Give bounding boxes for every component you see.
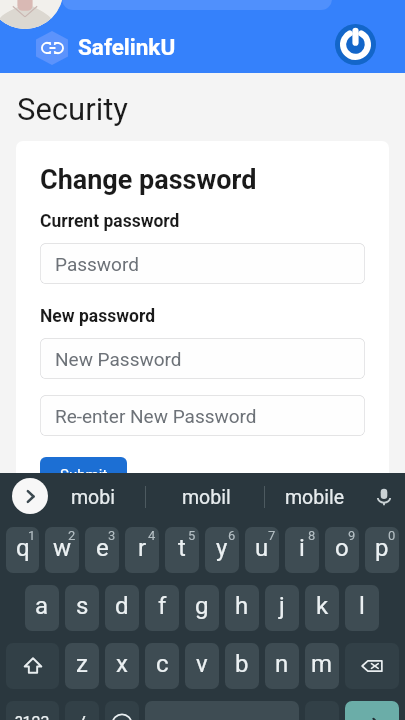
button[interactable]: New Password: [40, 338, 365, 379]
button[interactable]: Emoji: [105, 701, 139, 720]
button[interactable]: v: [185, 643, 219, 689]
staticText: l: [359, 592, 365, 620]
staticText: Current password: [40, 211, 180, 232]
staticText: h: [235, 592, 249, 620]
staticText: b: [235, 650, 249, 678]
button[interactable]: Profile: [0, 0, 63, 29]
staticText: SafelinkU: [78, 34, 176, 60]
staticText: c: [156, 650, 169, 678]
button[interactable]: SafelinkU: [35, 31, 176, 65]
staticText: Security: [17, 91, 129, 127]
staticText: 8: [308, 528, 316, 543]
staticText: t: [178, 534, 186, 562]
button[interactable]: Backspace: [345, 643, 399, 689]
staticText: Password: [55, 253, 139, 275]
button[interactable]: i: [285, 527, 319, 573]
button[interactable]: Shift: [6, 643, 59, 689]
button[interactable]: b: [225, 643, 259, 689]
staticText: d: [115, 592, 129, 620]
staticText: 6: [228, 528, 236, 543]
staticText: ?123: [15, 713, 50, 720]
staticText: f: [158, 592, 167, 620]
button[interactable]: x: [105, 643, 139, 689]
button[interactable]: Password: [40, 243, 365, 284]
staticText: w: [53, 534, 72, 562]
staticText: a: [35, 592, 49, 620]
staticText: 2: [68, 528, 76, 543]
button[interactable]: u: [245, 527, 279, 573]
staticText: e: [96, 534, 109, 562]
button[interactable]: mobile: [265, 473, 363, 521]
staticText: 3: [108, 528, 116, 543]
button[interactable]: k: [305, 585, 339, 631]
button[interactable]: t: [165, 527, 199, 573]
button[interactable]: e: [85, 527, 119, 573]
button[interactable]: d: [105, 585, 139, 631]
staticText: i: [299, 534, 305, 562]
staticText: 0: [388, 528, 396, 543]
button[interactable]: j: [265, 585, 299, 631]
staticText: mobil: [182, 486, 231, 509]
staticText: 4: [148, 528, 156, 543]
staticText: mobile: [285, 486, 344, 509]
button[interactable]: o: [325, 527, 359, 573]
button[interactable]: h: [225, 585, 259, 631]
staticText: 9: [348, 528, 356, 543]
button[interactable]: Enter: [345, 701, 399, 720]
button[interactable]: ?123: [6, 701, 59, 720]
staticText: g: [195, 592, 209, 620]
button[interactable]: Voice input: [363, 473, 405, 521]
button[interactable]: Logout: [335, 24, 376, 65]
staticText: p: [375, 534, 389, 562]
staticText: Submit: [60, 466, 108, 484]
staticText: s: [76, 592, 89, 620]
staticText: New Password: [55, 348, 182, 370]
button[interactable]: Re-enter New Password: [40, 395, 365, 436]
button[interactable]: z: [65, 643, 99, 689]
staticText: v: [196, 650, 208, 678]
button[interactable]: m: [305, 643, 339, 689]
staticText: Re-enter New Password: [55, 405, 257, 427]
staticText: Change password: [40, 164, 257, 196]
staticText: j: [279, 592, 285, 620]
staticText: m: [311, 650, 333, 678]
staticText: 5: [188, 528, 196, 543]
button[interactable]: Submit: [40, 457, 127, 493]
button[interactable]: mobil: [146, 473, 266, 521]
staticText: n: [275, 650, 289, 678]
staticText: u: [255, 534, 269, 562]
button[interactable]: n: [265, 643, 299, 689]
button[interactable]: q: [6, 527, 39, 573]
button[interactable]: mobi: [44, 473, 142, 521]
staticText: 7: [268, 528, 276, 543]
staticText: q: [16, 534, 30, 562]
button[interactable]: l: [345, 585, 379, 631]
staticText: o: [335, 534, 349, 562]
button[interactable]: g: [185, 585, 219, 631]
button[interactable]: c: [145, 643, 179, 689]
button[interactable]: y: [205, 527, 239, 573]
staticText: mobi: [71, 486, 115, 509]
button[interactable]: p: [365, 527, 399, 573]
button[interactable]: w: [45, 527, 79, 573]
staticText: k: [316, 592, 329, 620]
staticText: New password: [40, 306, 156, 327]
staticText: x: [116, 650, 128, 678]
staticText: y: [216, 534, 228, 562]
staticText: /: [78, 711, 86, 720]
button[interactable]: More suggestions: [12, 478, 48, 514]
staticText: z: [76, 650, 88, 678]
staticText: r: [138, 534, 147, 562]
button[interactable]: r: [125, 527, 159, 573]
button[interactable]: s: [65, 585, 99, 631]
button[interactable]: f: [145, 585, 179, 631]
staticText: 1: [28, 528, 36, 543]
button[interactable]: /: [65, 701, 99, 720]
button[interactable]: a: [25, 585, 59, 631]
